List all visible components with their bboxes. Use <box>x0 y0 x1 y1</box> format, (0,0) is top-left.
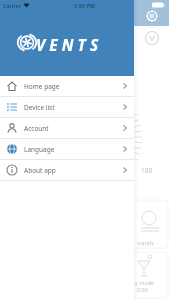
button[interactable]: About app <box>0 160 134 181</box>
staticText: Device list <box>24 103 55 112</box>
staticText: Account <box>24 124 49 133</box>
button[interactable]: Device list <box>0 97 134 118</box>
staticText: Language <box>24 145 55 154</box>
staticText: supply <box>137 239 155 246</box>
staticText: 100 <box>141 166 153 175</box>
staticText: 1:55 PM <box>74 2 95 9</box>
staticText: 0:00 <box>137 286 148 293</box>
staticText: VENTS <box>36 34 103 55</box>
staticText: Home page <box>24 82 60 91</box>
button[interactable]: Language <box>0 139 134 160</box>
staticText: Carrier <box>3 2 21 9</box>
staticText: y mode <box>135 279 155 286</box>
staticText: About app <box>24 166 56 175</box>
button[interactable]: Account <box>0 118 134 139</box>
button[interactable]: Home page <box>0 76 134 97</box>
